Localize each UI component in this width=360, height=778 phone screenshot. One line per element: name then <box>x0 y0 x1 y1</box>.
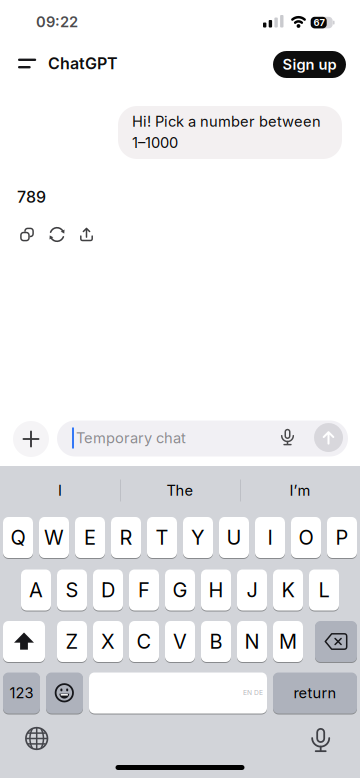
button[interactable]: A <box>21 569 51 610</box>
button[interactable] <box>45 222 69 246</box>
button[interactable]: The <box>125 470 235 510</box>
staticText: 789 <box>17 188 46 206</box>
staticText: F <box>138 578 150 602</box>
button[interactable]: R <box>111 517 141 558</box>
button[interactable]: C <box>129 621 159 662</box>
staticText: The <box>166 482 193 499</box>
button[interactable]: Y <box>183 517 213 558</box>
staticText: 123 <box>9 684 33 702</box>
staticText: O <box>298 526 313 549</box>
button[interactable]: D <box>93 569 123 610</box>
staticText: A <box>29 578 43 602</box>
staticText: return <box>293 684 336 702</box>
staticText: Q <box>10 526 25 549</box>
button[interactable]: I <box>5 470 115 510</box>
staticText: 67 <box>313 17 324 28</box>
staticText: N <box>244 630 259 653</box>
staticText: H <box>208 578 223 602</box>
button[interactable]: Temporary chat <box>57 420 348 456</box>
button[interactable]: N <box>237 621 267 662</box>
staticText: 1–1000 <box>132 134 178 151</box>
button[interactable] <box>20 721 54 755</box>
button[interactable] <box>15 222 39 246</box>
button[interactable] <box>314 423 343 452</box>
staticText: B <box>209 630 222 653</box>
button[interactable]: U <box>219 517 249 558</box>
button[interactable] <box>13 421 49 457</box>
button[interactable]: 123 <box>3 672 40 713</box>
button[interactable]: H <box>201 569 231 610</box>
staticText: R <box>119 526 132 549</box>
button[interactable]: W <box>39 517 69 558</box>
staticText: E <box>84 526 96 549</box>
staticText: M <box>279 630 297 653</box>
staticText: G <box>172 578 187 602</box>
staticText: S <box>65 578 78 602</box>
button[interactable] <box>304 723 338 757</box>
staticText: D <box>101 578 115 602</box>
staticText: K <box>281 578 294 602</box>
button[interactable]: L <box>309 569 339 610</box>
button[interactable] <box>74 222 98 246</box>
button[interactable] <box>13 49 41 77</box>
button[interactable] <box>3 621 45 662</box>
button[interactable]: X <box>93 621 123 662</box>
button[interactable]: I’m <box>245 470 355 510</box>
staticText: EN DE <box>243 689 263 696</box>
staticText: V <box>173 630 187 653</box>
button[interactable]: EN DE <box>89 672 267 713</box>
button[interactable]: V <box>165 621 195 662</box>
staticText: I <box>267 526 272 549</box>
staticText: T <box>155 526 168 549</box>
staticText: I <box>58 482 62 499</box>
button[interactable]: J <box>237 569 267 610</box>
staticText: Hi! Pick a number between <box>132 113 321 130</box>
button[interactable]: O <box>291 517 321 558</box>
button[interactable] <box>315 621 357 662</box>
staticText: I’m <box>289 482 310 499</box>
button[interactable]: T <box>147 517 177 558</box>
staticText: J <box>246 578 257 602</box>
staticText: ChatGPT <box>48 54 118 73</box>
staticText: Sign up <box>282 56 336 73</box>
button[interactable] <box>46 672 83 713</box>
staticText: Temporary chat <box>76 429 186 447</box>
button[interactable]: F <box>129 569 159 610</box>
button[interactable] <box>275 425 299 449</box>
staticText: Z <box>65 630 78 653</box>
button[interactable]: I <box>255 517 285 558</box>
button[interactable]: Q <box>3 517 33 558</box>
staticText: L <box>318 578 329 602</box>
staticText: W <box>44 526 64 549</box>
staticText: Y <box>191 526 205 549</box>
button[interactable]: Z <box>57 621 87 662</box>
button[interactable]: B <box>201 621 231 662</box>
button[interactable]: return <box>273 672 357 713</box>
button[interactable]: M <box>273 621 303 662</box>
button[interactable]: S <box>57 569 87 610</box>
staticText: U <box>226 526 241 549</box>
staticText: 09:22 <box>36 13 78 31</box>
button[interactable]: G <box>165 569 195 610</box>
button[interactable]: Sign up <box>273 51 346 78</box>
button[interactable]: E <box>75 517 105 558</box>
staticText: X <box>101 630 115 653</box>
staticText: P <box>335 526 348 549</box>
staticText: C <box>136 630 151 653</box>
button[interactable]: K <box>273 569 303 610</box>
button[interactable]: P <box>327 517 357 558</box>
